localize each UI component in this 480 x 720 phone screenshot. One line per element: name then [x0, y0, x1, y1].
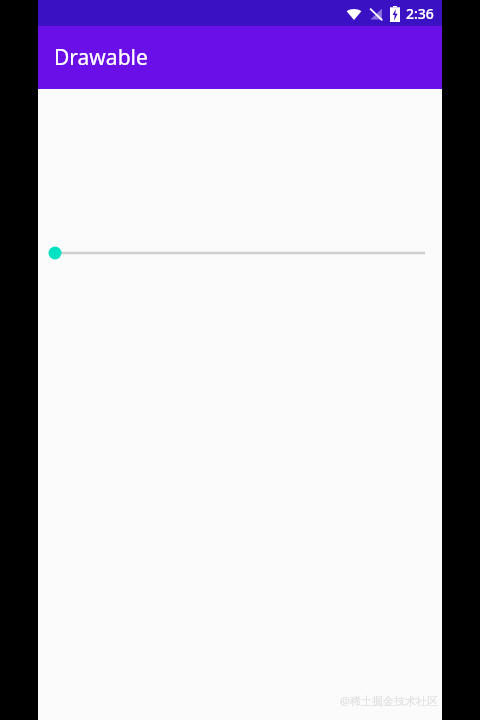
staticText: Drawable — [54, 43, 148, 72]
staticText: 2:36 — [406, 4, 434, 23]
staticText: @稀土掘金技术社区 — [340, 693, 438, 708]
button[interactable]: Slider — [38, 239, 442, 267]
